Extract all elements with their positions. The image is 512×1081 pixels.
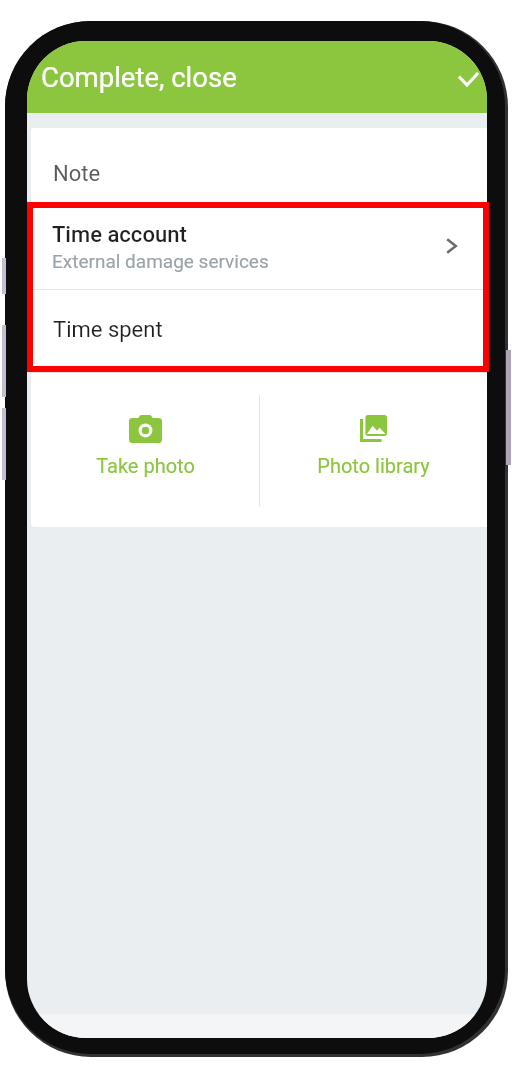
button[interactable]: Note (31, 128, 487, 204)
staticText: Photo library (317, 454, 430, 477)
staticText: Note (53, 161, 101, 187)
staticText: Take photo (96, 454, 195, 477)
button[interactable]: Time spent (31, 290, 487, 372)
staticText: External damage services (52, 250, 269, 272)
staticText: Time account (52, 222, 187, 248)
button[interactable]: Time account (31, 205, 487, 289)
staticText: Complete, close (41, 61, 237, 93)
button[interactable]: Take photo (31, 373, 259, 527)
button[interactable]: Photo library (259, 373, 487, 527)
button[interactable]: Done (446, 57, 487, 101)
staticText: Time spent (53, 317, 163, 343)
